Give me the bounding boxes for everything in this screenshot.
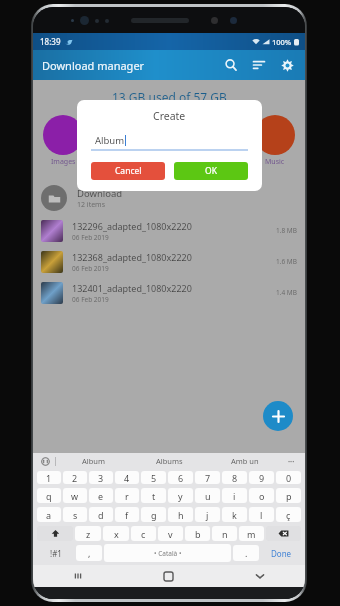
button[interactable]: p xyxy=(276,488,301,503)
button[interactable]: k xyxy=(222,507,247,522)
button[interactable]: Cancel xyxy=(91,162,165,180)
button[interactable]: More options xyxy=(283,453,299,469)
button[interactable]: !#1 xyxy=(37,544,74,562)
staticText: 132368_adapted_1080x2220 xyxy=(72,251,192,263)
button[interactable]: o xyxy=(249,488,274,503)
button[interactable]: c xyxy=(131,526,156,541)
staticText: p xyxy=(286,490,292,502)
button[interactable]: Home xyxy=(123,565,214,587)
button[interactable]: 132368_adapted_1080x2220 xyxy=(33,246,305,277)
button[interactable]: 7 xyxy=(195,471,220,484)
button[interactable]: Music xyxy=(255,115,295,167)
button[interactable]: • Català • xyxy=(104,544,231,562)
button[interactable]: x xyxy=(103,526,129,541)
staticText: Amb un xyxy=(231,456,259,466)
button[interactable]: n xyxy=(212,526,237,541)
staticText: 1.4 MB xyxy=(276,288,297,297)
button[interactable]: 2 xyxy=(63,471,87,484)
button[interactable]: Amb un xyxy=(207,453,283,469)
staticText: d xyxy=(98,509,104,521)
staticText: 18:39 xyxy=(40,36,61,47)
button[interactable]: 4 xyxy=(115,471,139,484)
staticText: 7 xyxy=(205,472,211,484)
button[interactable]: 9 xyxy=(249,471,274,484)
button[interactable]: Shift xyxy=(37,526,73,541)
staticText: e xyxy=(98,490,104,502)
staticText: 4 xyxy=(124,472,130,484)
staticText: 0 xyxy=(286,472,292,484)
staticText: o xyxy=(259,490,265,502)
staticText: Images xyxy=(51,157,76,167)
button[interactable]: g xyxy=(141,507,166,522)
button[interactable]: Recents xyxy=(33,565,123,587)
staticText: g xyxy=(151,509,157,521)
button[interactable]: 132296_adapted_1080x2220 xyxy=(33,215,305,246)
staticText: 6 xyxy=(178,472,184,484)
button[interactable]: Download xyxy=(33,181,305,215)
button[interactable]: r xyxy=(115,488,139,503)
button[interactable]: y xyxy=(168,488,193,503)
button[interactable]: Done xyxy=(261,544,301,562)
button[interactable]: b xyxy=(185,526,210,541)
staticText: 12 items xyxy=(77,200,106,210)
button[interactable]: l xyxy=(249,507,274,522)
staticText: Download manager xyxy=(42,58,145,73)
button[interactable]: . xyxy=(233,545,259,561)
button[interactable]: q xyxy=(37,488,61,503)
button[interactable]: 0 xyxy=(276,471,301,484)
button[interactable]: Add xyxy=(263,401,293,431)
button[interactable]: OK xyxy=(174,162,248,180)
button[interactable]: , xyxy=(76,545,102,561)
staticText: u xyxy=(205,490,211,502)
staticText: 1 xyxy=(46,472,52,484)
button[interactable]: a xyxy=(37,507,61,522)
button[interactable]: Sort xyxy=(248,54,270,76)
button[interactable]: Settings xyxy=(276,54,298,76)
staticText: 5 xyxy=(151,472,157,484)
button[interactable]: s xyxy=(63,507,87,522)
staticText: r xyxy=(125,490,129,502)
button[interactable]: u xyxy=(195,488,220,503)
button[interactable]: m xyxy=(239,526,264,541)
staticText: 100% xyxy=(272,37,292,47)
staticText: j xyxy=(206,509,209,521)
staticText: 8 xyxy=(232,472,238,484)
staticText: 06 Feb 2019 xyxy=(72,264,109,273)
staticText: h xyxy=(178,509,184,521)
button[interactable]: Voice input xyxy=(39,455,52,468)
button[interactable]: Album xyxy=(56,453,131,469)
button[interactable]: Images xyxy=(43,115,83,167)
button[interactable]: d xyxy=(89,507,113,522)
button[interactable]: h xyxy=(168,507,193,522)
staticText: y xyxy=(178,490,183,502)
button[interactable]: Hide keyboard xyxy=(214,565,305,587)
button[interactable]: 1 xyxy=(37,471,61,484)
staticText: m xyxy=(247,528,256,540)
staticText: w xyxy=(71,490,79,502)
button[interactable]: 6 xyxy=(168,471,193,484)
staticText: Album xyxy=(82,456,105,466)
button[interactable]: Backspace xyxy=(266,526,301,541)
staticText: 132401_adapted_1080x2220 xyxy=(72,282,192,294)
button[interactable]: Search xyxy=(220,54,242,76)
staticText: Create xyxy=(153,109,186,123)
button[interactable]: v xyxy=(158,526,183,541)
staticText: n xyxy=(222,528,228,540)
button[interactable]: f xyxy=(115,507,139,522)
button[interactable]: j xyxy=(195,507,220,522)
staticText: t xyxy=(152,490,156,502)
button[interactable]: 5 xyxy=(141,471,166,484)
staticText: q xyxy=(46,490,52,502)
button[interactable]: w xyxy=(63,488,87,503)
button[interactable]: ç xyxy=(276,507,301,522)
button[interactable]: 8 xyxy=(222,471,247,484)
button[interactable]: Albums xyxy=(131,453,207,469)
staticText: z xyxy=(86,528,91,540)
button[interactable]: 3 xyxy=(89,471,113,484)
button[interactable]: e xyxy=(89,488,113,503)
button[interactable]: z xyxy=(75,526,101,541)
button[interactable]: t xyxy=(141,488,166,503)
button[interactable]: 132401_adapted_1080x2220 xyxy=(33,277,305,308)
button[interactable]: i xyxy=(222,488,247,503)
staticText: f xyxy=(125,509,129,521)
